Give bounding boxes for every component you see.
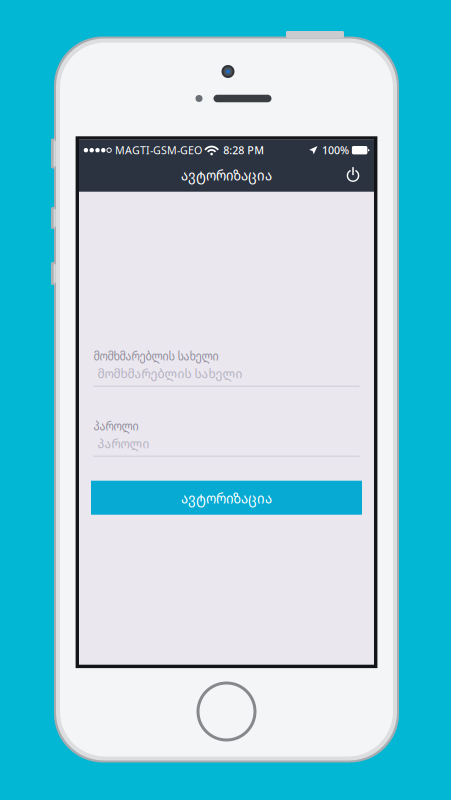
staticText: პაროლი (97, 434, 149, 452)
staticText: მომხმარებლის სახელი (93, 348, 218, 364)
button[interactable]: ავტორიზაცია (91, 481, 362, 515)
staticText: მომხმარებლის სახელი (97, 364, 242, 382)
staticText: პაროლი (93, 418, 138, 434)
button[interactable]: პაროლი (93, 431, 359, 457)
staticText: 8:28 PM (223, 143, 264, 157)
staticText: ავტორიზაცია (181, 165, 272, 185)
staticText: ავტორიზაცია (181, 488, 272, 508)
staticText: 100% (322, 143, 349, 157)
button[interactable]: მომხმარებლის სახელი (93, 361, 359, 387)
staticText: MAGTI-GSM-GEO (115, 143, 202, 157)
button[interactable]: Log out (335, 161, 374, 191)
